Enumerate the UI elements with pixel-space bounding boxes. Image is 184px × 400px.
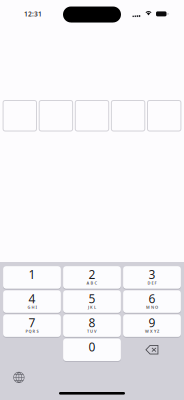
staticText: A B C bbox=[86, 280, 97, 286]
staticText: 12:31 bbox=[24, 9, 42, 18]
button[interactable]: Code digit bbox=[147, 100, 181, 131]
staticText: 6 bbox=[148, 291, 155, 306]
button[interactable]: Code digit bbox=[3, 100, 36, 131]
staticText: 2 bbox=[88, 266, 95, 282]
button[interactable]: 1 bbox=[3, 266, 61, 289]
staticText: 8 bbox=[88, 315, 95, 331]
staticText: 0 bbox=[88, 339, 95, 355]
staticText: 3 bbox=[148, 266, 155, 282]
button[interactable]: 9 bbox=[123, 314, 181, 337]
staticText: 9 bbox=[148, 315, 155, 331]
staticText: J K L bbox=[88, 304, 96, 310]
button[interactable]: Code digit bbox=[75, 100, 109, 131]
staticText: P Q R S bbox=[25, 329, 38, 334]
button[interactable]: 7 bbox=[3, 314, 61, 337]
button[interactable]: 4 bbox=[3, 290, 61, 313]
staticText: M N O bbox=[146, 304, 158, 310]
button[interactable]: 2 bbox=[63, 266, 121, 289]
staticText: D E F bbox=[147, 280, 156, 286]
button[interactable]: 3 bbox=[123, 266, 181, 289]
button[interactable]: 8 bbox=[63, 314, 121, 337]
staticText: 4 bbox=[28, 291, 35, 306]
button[interactable]: Next keyboard bbox=[13, 371, 25, 383]
button[interactable]: 6 bbox=[123, 290, 181, 313]
staticText: G H I bbox=[27, 304, 36, 310]
staticText: 5 bbox=[88, 291, 95, 306]
button[interactable]: Delete bbox=[123, 338, 181, 361]
staticText: T U V bbox=[87, 329, 97, 334]
button[interactable]: Code digit bbox=[111, 100, 145, 131]
staticText: 7 bbox=[28, 315, 35, 331]
button[interactable]: Code digit bbox=[39, 100, 73, 131]
staticText: 1 bbox=[28, 266, 35, 282]
staticText: W X Y Z bbox=[145, 329, 159, 334]
button[interactable]: 5 bbox=[63, 290, 121, 313]
button[interactable]: 0 bbox=[63, 338, 121, 361]
